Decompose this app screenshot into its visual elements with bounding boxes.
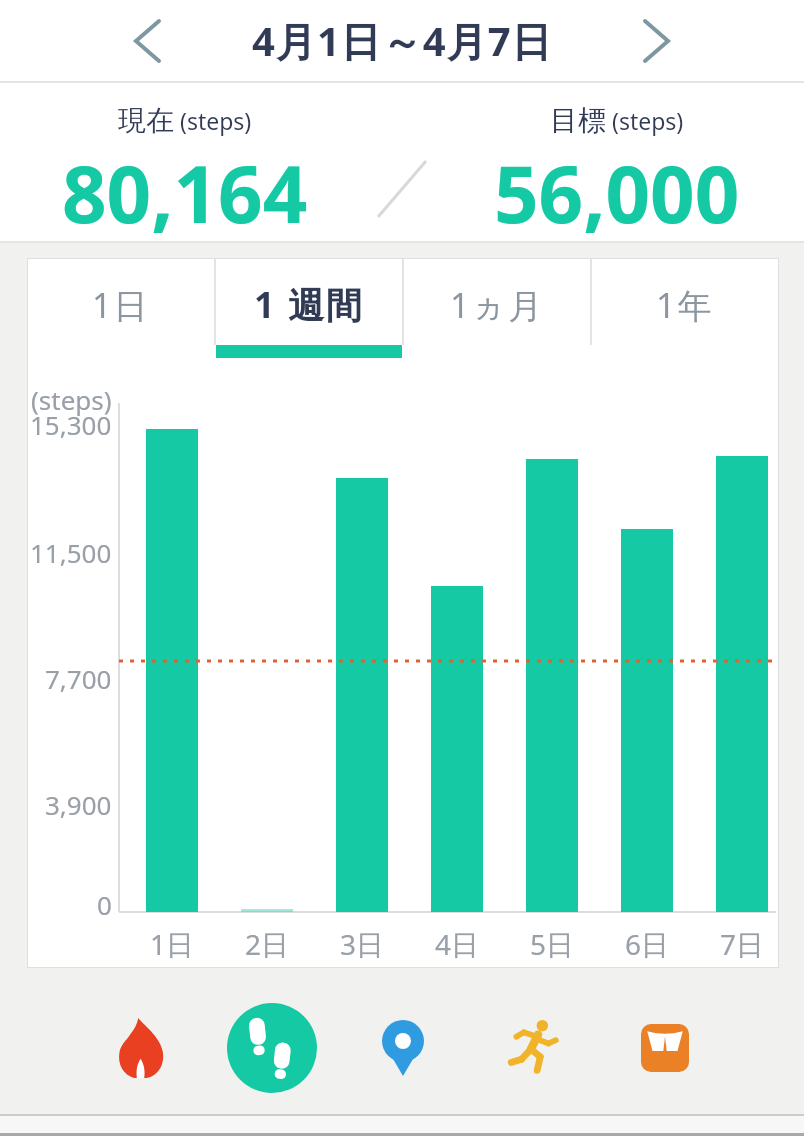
staticText: 1ヵ月	[450, 282, 545, 328]
staticText: 目標	[550, 103, 606, 138]
button[interactable]: 1日	[28, 259, 214, 358]
staticText: (steps)	[174, 105, 252, 136]
staticText: 56,000	[494, 140, 740, 241]
staticText: 3,900	[45, 787, 112, 822]
staticText: 2日	[245, 925, 290, 963]
button[interactable]	[337, 988, 468, 1108]
staticText: 1年	[656, 282, 714, 328]
staticText: 4月1日～4月7日	[252, 13, 553, 68]
staticText: (steps)	[31, 382, 112, 417]
button[interactable]	[630, 13, 686, 69]
staticText: (steps)	[606, 105, 684, 136]
staticText: 5日	[530, 925, 575, 963]
button[interactable]	[75, 988, 206, 1108]
staticText: 1日	[92, 282, 150, 328]
staticText: 7,700	[45, 661, 112, 696]
button[interactable]: 1ヵ月	[404, 259, 590, 358]
staticText: 7日	[720, 925, 765, 963]
staticText: 15,300	[30, 407, 112, 442]
staticText: 3日	[340, 925, 385, 963]
button[interactable]: 1 週間	[216, 259, 402, 358]
button[interactable]	[468, 988, 599, 1108]
staticText: 6日	[625, 925, 670, 963]
staticText: 1 週間	[254, 280, 364, 329]
staticText: 4日	[435, 925, 480, 963]
button[interactable]: 1年	[592, 259, 778, 358]
button[interactable]	[206, 988, 337, 1108]
button[interactable]	[118, 13, 174, 69]
button[interactable]	[599, 988, 730, 1108]
staticText: 現在	[118, 103, 174, 138]
staticText: 0	[97, 887, 112, 922]
staticText: 1日	[150, 925, 195, 963]
staticText: 80,164	[62, 140, 308, 241]
staticText: 11,500	[30, 535, 112, 570]
